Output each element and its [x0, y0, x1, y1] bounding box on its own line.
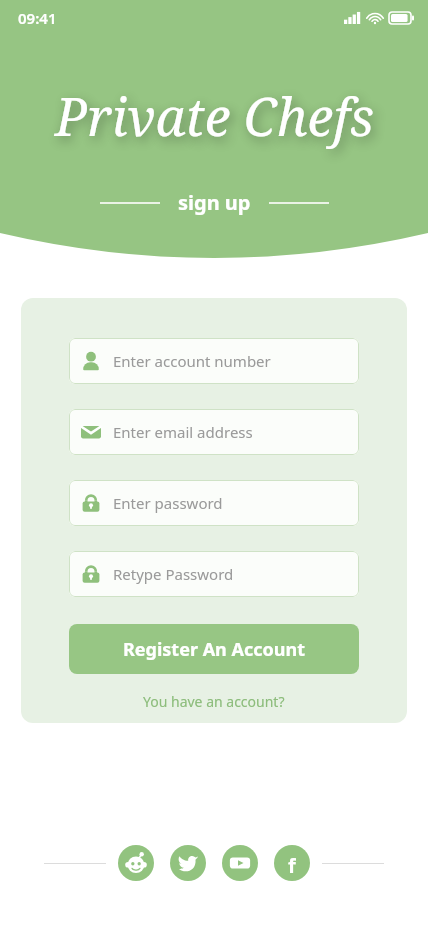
button[interactable]: Enter email address — [69, 409, 359, 455]
button[interactable]: YouTube — [222, 845, 258, 881]
button[interactable]: Enter account number — [69, 338, 359, 384]
staticText: 09:41 — [18, 8, 57, 28]
button[interactable]: Facebook — [274, 845, 310, 881]
staticText: Enter email address — [113, 422, 253, 442]
button[interactable]: Twitter — [170, 845, 206, 881]
button[interactable]: Register An Account — [69, 624, 359, 674]
button[interactable]: You have an account? — [135, 688, 293, 715]
staticText: Register An Account — [123, 637, 305, 662]
staticText: f — [288, 852, 296, 874]
staticText: Private Chefs — [55, 80, 374, 151]
staticText: Enter password — [113, 493, 223, 513]
button[interactable]: Enter password — [69, 480, 359, 526]
button[interactable]: Retype Password — [69, 551, 359, 597]
button[interactable]: Reddit — [118, 845, 154, 881]
staticText: sign up — [178, 189, 251, 216]
staticText: Enter account number — [113, 351, 271, 371]
staticText: Retype Password — [113, 564, 234, 584]
